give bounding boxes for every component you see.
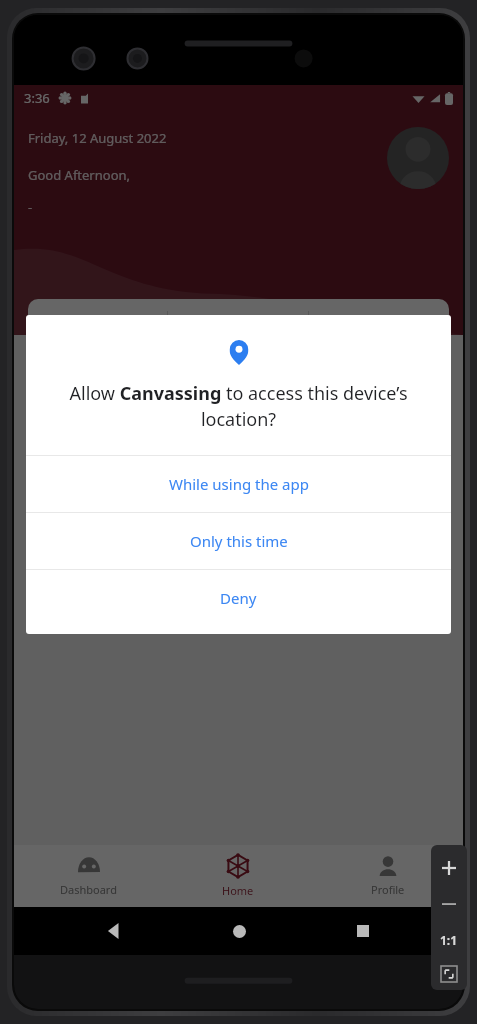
staticText: Home <box>222 883 254 898</box>
staticText: While using the app <box>169 474 309 494</box>
button[interactable]: Home <box>215 907 263 955</box>
button[interactable]: Rp0,00 <box>309 299 449 385</box>
button[interactable]: While using the app <box>26 456 451 512</box>
button[interactable]: Deny <box>26 570 451 626</box>
button[interactable]: Only this time <box>26 513 451 569</box>
button[interactable]: Recent apps <box>339 907 387 955</box>
staticText: 3:36 <box>24 89 50 107</box>
button[interactable]: Zoom in <box>434 853 464 883</box>
button[interactable]: Home <box>163 845 313 907</box>
staticText: Good Afternoon, <box>28 166 131 184</box>
staticText: Deny <box>220 588 257 608</box>
staticText: - <box>28 198 33 216</box>
button[interactable]: Profile picture <box>387 127 449 189</box>
staticText: Dashboard <box>60 882 117 897</box>
button[interactable]: Actual size <box>434 925 464 955</box>
button[interactable]: 0 <box>28 299 167 385</box>
button[interactable]: Back <box>90 907 138 955</box>
button[interactable]: Zoom out <box>434 889 464 919</box>
button[interactable]: 0 <box>168 299 308 385</box>
staticText: 1:1 <box>440 932 458 948</box>
button[interactable]: Dashboard <box>14 845 163 907</box>
staticText: Allow Canvassing to access this device’s… <box>44 381 433 431</box>
staticText: Friday, 12 August 2022 <box>28 129 167 147</box>
button[interactable]: Fit to window <box>434 959 464 989</box>
button[interactable]: Profile <box>313 845 463 907</box>
staticText: Only this time <box>190 531 288 551</box>
staticText: Profile <box>371 882 405 897</box>
staticText: 0 <box>234 321 243 341</box>
staticText: Call <box>229 348 248 363</box>
